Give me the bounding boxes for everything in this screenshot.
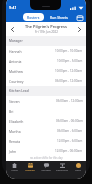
staticText: Renata <box>9 139 21 144</box>
button[interactable]: Run Sheets <box>46 13 72 21</box>
staticText: 9:41 <box>9 5 17 10</box>
staticText: Kitchen Lead <box>9 89 29 93</box>
staticText: Elizabeth <box>9 119 24 124</box>
staticText: The Pilgrim's Progress <box>25 24 67 29</box>
staticText: Manager <box>9 39 23 43</box>
button[interactable]: Courtney <box>6 76 86 86</box>
staticText: 12:00pm - 06:00am <box>55 149 83 153</box>
staticText: Calendar <box>25 169 35 172</box>
staticText: Hannah <box>9 49 22 54</box>
staticText: Home <box>11 169 18 172</box>
staticText: no active shifts for this day <box>30 156 63 160</box>
staticText: Rosters <box>27 15 40 20</box>
button[interactable]: Calendar <box>22 161 38 179</box>
button[interactable]: Dalia <box>70 161 86 179</box>
staticText: 06:00am - 06:00am <box>56 119 83 123</box>
staticText: Bri <box>9 109 14 114</box>
staticText: 06:00am - 6:00am <box>57 129 83 133</box>
staticText: 10:00pm - 10:00am <box>55 49 83 53</box>
staticText: Fri 17th Jun 2022 <box>35 30 58 34</box>
button[interactable]: Antonia <box>6 56 86 66</box>
button[interactable]: Elizabeth <box>6 116 86 126</box>
button[interactable]: Matthew <box>6 66 86 76</box>
button[interactable]: Bri <box>6 106 86 116</box>
button[interactable]: John <box>6 146 86 156</box>
button[interactable]: Martha <box>6 126 86 136</box>
button[interactable]: Previous day <box>8 25 17 34</box>
staticText: Matthew <box>9 69 24 74</box>
button[interactable]: Hannah <box>6 46 86 56</box>
button[interactable]: Home <box>6 161 22 179</box>
staticText: Run Sheets <box>50 15 68 20</box>
staticText: 10:00pm - 5:00am <box>57 59 83 63</box>
staticText: Message <box>41 169 51 172</box>
staticText: Courtney <box>9 79 24 84</box>
staticText: Martha <box>9 129 21 134</box>
staticText: 10:00pm - 12:00am <box>55 69 83 73</box>
button[interactable]: Message <box>38 161 54 179</box>
staticText: Steven <box>9 99 20 104</box>
button[interactable]: Dashboard <box>54 161 70 179</box>
staticText: Dalia <box>75 169 81 172</box>
button[interactable]: Steven <box>6 96 86 106</box>
staticText: 12:00pm - 6:00am <box>57 139 83 143</box>
staticText: Antonia <box>9 59 22 64</box>
button[interactable]: Next day <box>75 25 84 34</box>
button[interactable]: Rosters <box>23 13 44 21</box>
staticText: John <box>9 149 17 154</box>
staticText: Dashboard <box>56 169 68 172</box>
staticText: 06:00am - 12:00am <box>56 99 83 103</box>
staticText: 06:00pm - 12:00am <box>55 79 83 83</box>
button[interactable]: Renata <box>6 136 86 146</box>
button[interactable]: Calendar <box>76 14 83 21</box>
